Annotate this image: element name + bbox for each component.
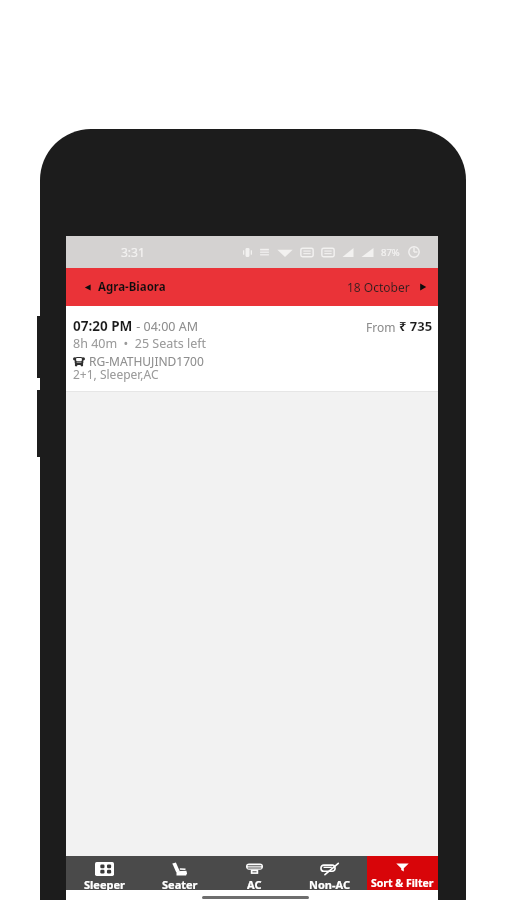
button[interactable]: Non-AC xyxy=(292,856,367,890)
staticText: Sleeper xyxy=(84,877,125,892)
staticText: From xyxy=(366,319,399,335)
staticText: Seater xyxy=(162,877,198,892)
staticText: - 04:00 AM xyxy=(133,318,199,335)
staticText: ₹ 735 xyxy=(399,317,433,335)
staticText: 3:31 xyxy=(121,244,145,260)
button[interactable]: Sleeper xyxy=(66,856,142,890)
button[interactable]: Back xyxy=(66,270,174,304)
button[interactable]: 18 October xyxy=(337,270,438,304)
button[interactable]: Sort & Filter xyxy=(367,856,438,890)
other: Back xyxy=(84,284,91,291)
button[interactable]: Seater xyxy=(142,856,217,890)
staticText: Agra-Biaora xyxy=(98,279,166,295)
staticText: 07:20 PM xyxy=(73,317,133,335)
staticText: Non-AC xyxy=(309,877,350,892)
staticText: 2+1, Sleeper,AC xyxy=(73,366,159,382)
staticText: 87% xyxy=(381,246,400,259)
staticText: AC xyxy=(247,877,262,892)
other: Next day xyxy=(419,283,427,291)
button[interactable]: 07:20 PM xyxy=(66,306,438,392)
staticText: RG-MATHUJIND1700 xyxy=(89,353,204,369)
staticText: 8h 40m • 25 Seats left xyxy=(73,335,207,352)
staticText: Sort & Filter xyxy=(371,876,434,890)
staticText: 18 October xyxy=(347,279,410,295)
button[interactable]: AC xyxy=(217,856,292,890)
